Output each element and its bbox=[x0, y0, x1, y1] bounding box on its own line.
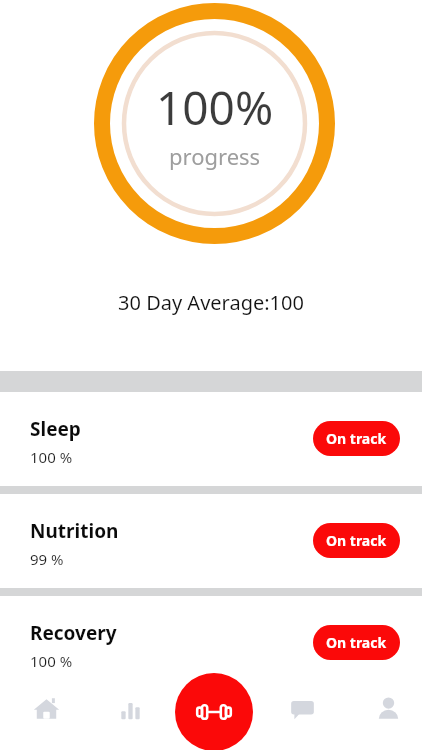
staticText: 100% bbox=[156, 76, 274, 139]
button[interactable]: Sleep bbox=[0, 392, 422, 486]
button[interactable]: Recovery bbox=[0, 596, 422, 690]
staticText: 100 % bbox=[30, 651, 73, 671]
button[interactable]: Messages bbox=[278, 684, 326, 732]
staticText: On track bbox=[326, 531, 387, 550]
button[interactable]: Home bbox=[22, 684, 70, 732]
button[interactable]: On track bbox=[313, 421, 400, 456]
staticText: Recovery bbox=[30, 620, 117, 646]
button[interactable]: Profile bbox=[364, 684, 412, 732]
button[interactable]: Statistics bbox=[106, 684, 154, 732]
staticText: Nutrition bbox=[30, 518, 119, 544]
button[interactable]: Start workout bbox=[175, 673, 253, 750]
staticText: 99 % bbox=[30, 549, 64, 569]
button[interactable]: On track bbox=[313, 625, 400, 660]
staticText: On track bbox=[326, 429, 387, 448]
staticText: On track bbox=[326, 633, 387, 652]
staticText: 30 Day Average:100 bbox=[0, 289, 422, 316]
staticText: Sleep bbox=[30, 416, 81, 442]
button[interactable]: On track bbox=[313, 523, 400, 558]
staticText: 100 % bbox=[30, 447, 73, 467]
button[interactable]: Nutrition bbox=[0, 494, 422, 588]
staticText: progress bbox=[169, 141, 261, 171]
